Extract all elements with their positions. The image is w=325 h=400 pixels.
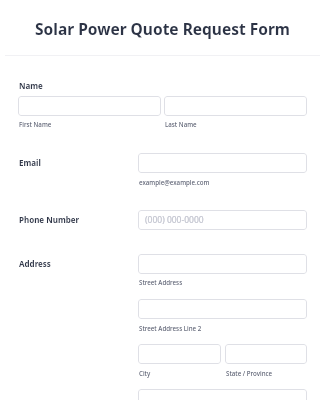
- staticText: Email: [19, 157, 41, 168]
- button[interactable]: [138, 299, 307, 319]
- staticText: Address: [19, 258, 51, 269]
- button[interactable]: (000) 000-0000: [138, 210, 307, 230]
- staticText: Solar Power Quote Request Form: [0, 18, 325, 39]
- staticText: example@example.com: [139, 178, 210, 186]
- staticText: City: [139, 369, 151, 377]
- button[interactable]: [225, 344, 307, 364]
- button[interactable]: [138, 254, 307, 274]
- staticText: Street Address: [139, 278, 183, 286]
- staticText: Street Address Line 2: [139, 324, 202, 332]
- staticText: Name: [19, 80, 43, 91]
- staticText: First Name: [19, 120, 52, 128]
- staticText: (000) 000-0000: [145, 214, 204, 226]
- button[interactable]: [138, 344, 221, 364]
- staticText: Phone Number: [19, 214, 80, 225]
- button[interactable]: [138, 153, 307, 173]
- staticText: State / Province: [226, 369, 273, 377]
- button[interactable]: [164, 96, 307, 116]
- staticText: Last Name: [165, 120, 197, 128]
- button[interactable]: [138, 389, 307, 400]
- button[interactable]: [18, 96, 161, 116]
